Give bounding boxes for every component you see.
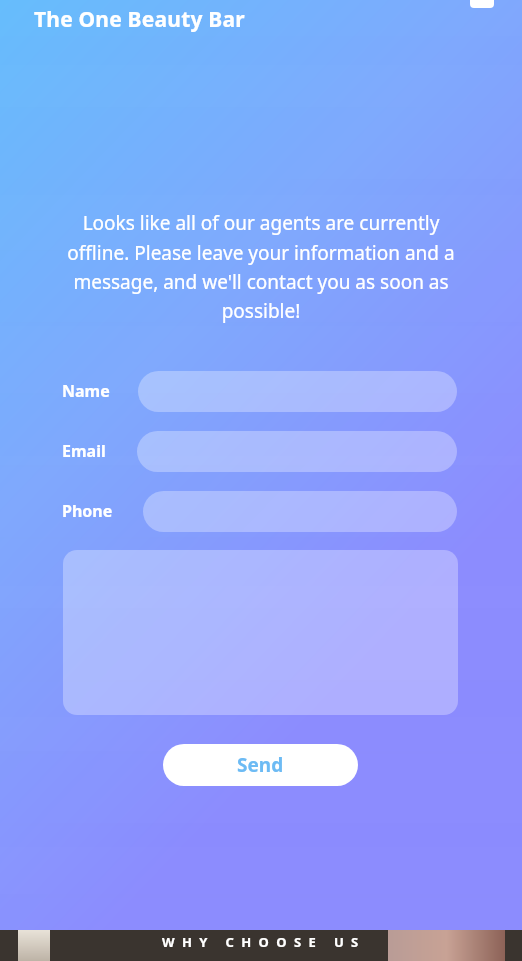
staticText: Email: [62, 440, 106, 462]
button[interactable]: Email: [137, 431, 457, 472]
button[interactable]: Email: [62, 440, 106, 462]
staticText: Name: [62, 380, 110, 402]
button[interactable]: Message: [63, 550, 458, 715]
button[interactable]: Phone: [143, 491, 457, 532]
button[interactable]: Name: [138, 371, 457, 412]
button[interactable]: Name: [62, 380, 110, 402]
button[interactable]: Send: [163, 744, 358, 786]
button[interactable]: The One Beauty Bar: [34, 5, 245, 34]
staticText: W H Y C H O O S E U S: [162, 933, 361, 951]
staticText: Phone: [62, 500, 113, 522]
button[interactable]: Phone: [62, 500, 113, 522]
staticText: Looks like all of our agents are current…: [60, 210, 462, 323]
button[interactable]: Menu: [470, 0, 494, 8]
staticText: Send: [237, 752, 284, 778]
